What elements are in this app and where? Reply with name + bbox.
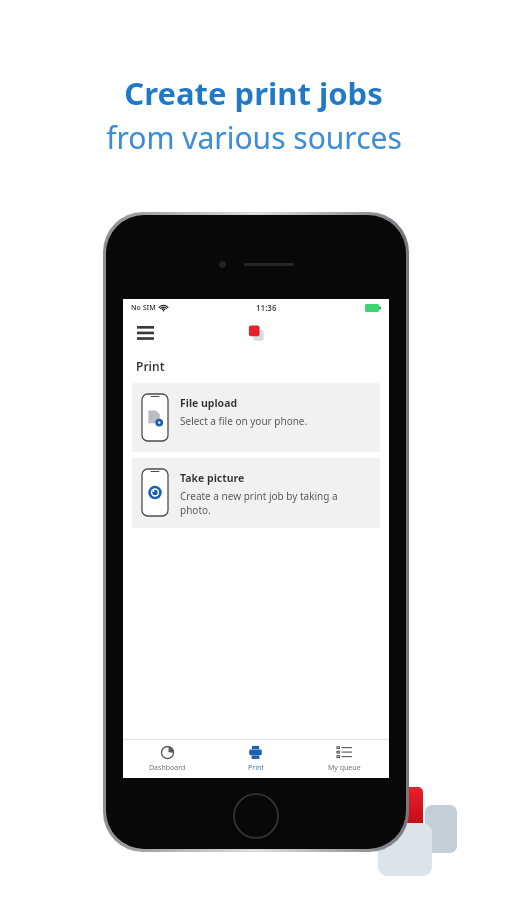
staticText: Create print jobs [124,72,383,114]
staticText: Create a new print job by taking a photo… [180,489,338,517]
staticText: Dashboard [149,763,186,773]
staticText: No SIM [131,303,156,313]
staticText: Print [136,358,165,374]
button[interactable]: Take picture [132,458,380,528]
button[interactable]: Menu [133,321,157,345]
button[interactable]: My queue [300,740,389,778]
staticText: 11:36 [256,302,277,313]
staticText: from various sources [106,117,402,158]
button[interactable]: Dashboard [123,740,211,778]
staticText: Select a file on your phone. [180,414,308,428]
staticText: Take picture [180,471,245,485]
staticText: File upload [180,396,238,410]
staticText: My queue [328,763,361,773]
staticText: Print [248,763,264,773]
button[interactable]: Print [211,740,300,778]
button[interactable]: File upload [132,383,380,452]
